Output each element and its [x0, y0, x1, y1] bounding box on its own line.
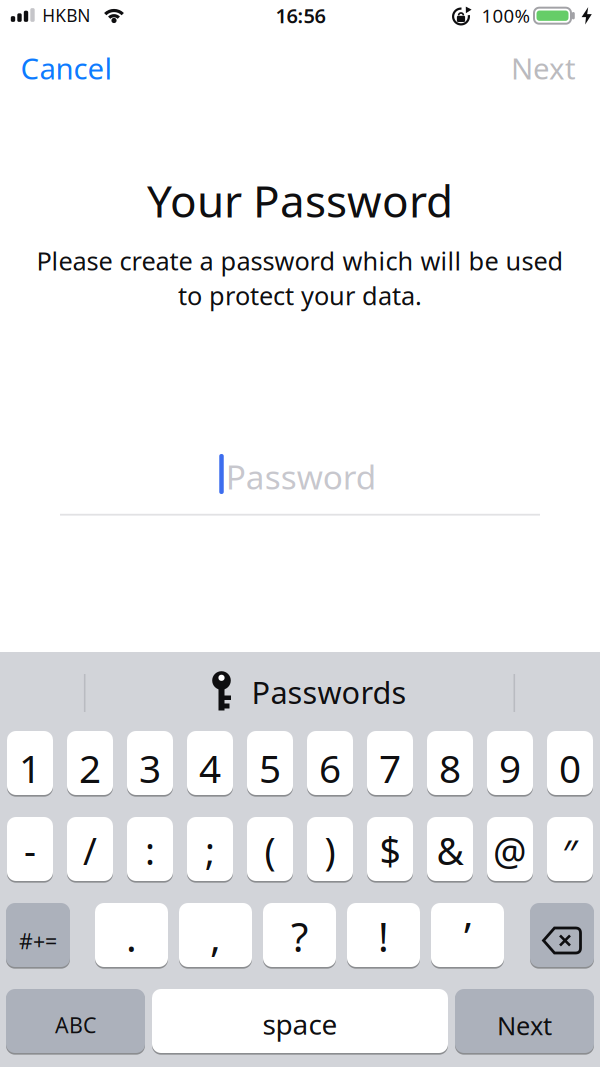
staticText: ( — [264, 826, 275, 875]
button[interactable]: , — [179, 902, 252, 968]
staticText: Please create a password which will be u… — [36, 244, 563, 277]
button[interactable]: ) — [307, 816, 353, 882]
button[interactable]: 9 — [487, 730, 533, 796]
staticText: 100% — [481, 3, 530, 28]
button[interactable]: @ — [487, 816, 533, 882]
button[interactable]: : — [127, 816, 173, 882]
staticText: Next — [497, 1009, 552, 1042]
button[interactable]: Next — [455, 988, 594, 1054]
button[interactable]: / — [67, 816, 113, 882]
staticText: Password — [226, 454, 377, 499]
button[interactable]: 0 — [547, 730, 593, 796]
staticText: space — [262, 1005, 337, 1043]
staticText: 1 — [19, 742, 41, 794]
button[interactable]: ’ — [431, 902, 504, 968]
staticText: $ — [379, 826, 400, 875]
button[interactable]: 3 — [127, 730, 173, 796]
staticText: Passwords — [251, 672, 406, 712]
staticText: 6 — [319, 742, 341, 794]
staticText: . — [126, 910, 137, 963]
staticText: ABC — [55, 1011, 96, 1039]
button[interactable]: Password — [60, 440, 540, 520]
staticText: @ — [493, 826, 527, 875]
staticText: 3 — [139, 742, 161, 794]
button[interactable]: . — [95, 902, 168, 968]
button[interactable]: $ — [367, 816, 413, 882]
button[interactable]: Next — [511, 48, 576, 87]
button[interactable]: 5 — [247, 730, 293, 796]
staticText: ’ — [464, 910, 471, 963]
staticText: , — [210, 910, 221, 963]
staticText: ! — [378, 910, 389, 963]
button[interactable]: 7 — [367, 730, 413, 796]
staticText: Next — [511, 48, 576, 87]
staticText: / — [83, 826, 97, 875]
button[interactable]: Passwords — [211, 671, 406, 711]
button[interactable]: ; — [187, 816, 233, 882]
staticText: ″ — [562, 828, 577, 878]
button[interactable]: 1 — [7, 730, 53, 796]
staticText: HKBN — [42, 4, 90, 27]
button[interactable]: 6 — [307, 730, 353, 796]
staticText: to protect your data. — [178, 278, 422, 312]
staticText: ? — [291, 910, 308, 963]
staticText: #+= — [19, 927, 57, 955]
button[interactable]: ABC — [6, 988, 145, 1054]
staticText: : — [145, 826, 155, 875]
staticText: 7 — [379, 742, 401, 794]
button[interactable]: ″ — [547, 816, 593, 882]
staticText: 16:56 — [275, 2, 325, 29]
staticText: ) — [324, 826, 335, 875]
staticText: Cancel — [20, 48, 112, 87]
button[interactable]: Delete — [530, 902, 594, 968]
button[interactable]: 4 — [187, 730, 233, 796]
staticText: Your Password — [147, 171, 453, 230]
staticText: ; — [205, 826, 215, 875]
staticText: 8 — [439, 742, 461, 794]
staticText: 0 — [559, 742, 581, 794]
button[interactable]: ( — [247, 816, 293, 882]
staticText: 5 — [259, 742, 281, 794]
staticText: 4 — [199, 742, 221, 794]
staticText: 9 — [499, 742, 521, 794]
button[interactable]: ! — [347, 902, 420, 968]
staticText: - — [24, 826, 36, 875]
button[interactable]: ? — [263, 902, 336, 968]
button[interactable]: 2 — [67, 730, 113, 796]
button[interactable]: space — [152, 988, 448, 1054]
button[interactable]: Cancel — [20, 48, 112, 87]
button[interactable]: 8 — [427, 730, 473, 796]
button[interactable]: #+= — [6, 902, 70, 968]
button[interactable]: & — [427, 816, 473, 882]
staticText: 2 — [79, 742, 101, 794]
button[interactable]: - — [7, 816, 53, 882]
staticText: & — [436, 826, 463, 875]
